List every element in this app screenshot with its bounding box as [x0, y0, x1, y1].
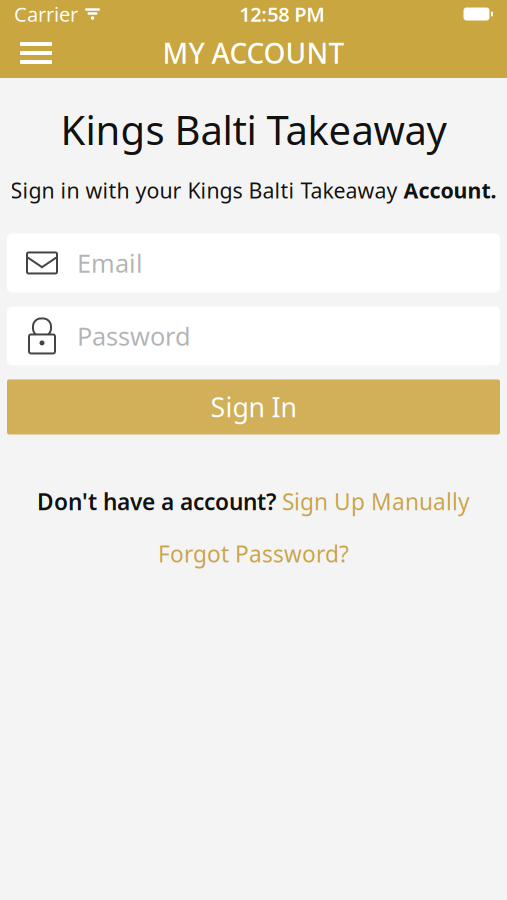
button[interactable]: Sign Up Manually — [282, 486, 470, 516]
button[interactable]: Forgot Password? — [158, 538, 349, 569]
staticText: Account. — [403, 176, 496, 204]
staticText: 12:58 PM — [239, 1, 325, 27]
staticText: Forgot Password? — [158, 538, 349, 569]
button[interactable]: Sign In — [7, 379, 500, 434]
staticText: Kings Balti Takeaway — [60, 103, 446, 156]
staticText: Sign in with your Kings Balti Takeaway — [10, 176, 403, 204]
staticText: Carrier — [14, 1, 78, 27]
staticText: Sign In — [210, 389, 296, 425]
staticText: Email — [77, 246, 143, 280]
staticText: MY ACCOUNT — [162, 34, 344, 72]
button[interactable]: Menu — [10, 31, 62, 75]
button[interactable]: Email — [7, 233, 500, 292]
staticText: Sign Up Manually — [282, 486, 470, 516]
staticText: Password — [77, 319, 191, 353]
button[interactable]: Password — [7, 306, 500, 365]
staticText: Don't have a account? — [37, 486, 282, 516]
